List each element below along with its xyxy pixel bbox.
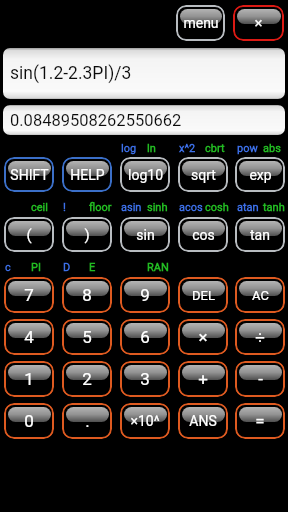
staticText: sin xyxy=(136,227,155,243)
staticText: ln xyxy=(147,142,156,155)
button[interactable]: log10 xyxy=(120,157,170,192)
staticText: 1 xyxy=(24,369,34,389)
button[interactable]: DEL xyxy=(178,277,228,313)
button[interactable]: tan xyxy=(235,217,285,252)
staticText: atan xyxy=(237,201,259,214)
button[interactable]: 1 xyxy=(4,361,54,397)
button[interactable]: 8 xyxy=(62,277,112,313)
button[interactable]: × xyxy=(233,5,284,41)
staticText: ) xyxy=(84,226,90,244)
staticText: cbrt xyxy=(205,142,225,155)
button[interactable]: 7 xyxy=(4,277,54,313)
button[interactable]: 4 xyxy=(4,319,54,355)
button[interactable]: sin xyxy=(120,217,170,252)
staticText: ! xyxy=(63,201,66,214)
staticText: HELP xyxy=(70,167,105,183)
staticText: 3 xyxy=(140,369,150,389)
other: Close xyxy=(233,5,284,41)
button[interactable]: ) xyxy=(62,217,112,252)
button[interactable]: 6 xyxy=(120,319,170,355)
button[interactable]: = xyxy=(235,403,285,439)
staticText: × xyxy=(198,327,208,347)
staticText: 0.08489508262550662 xyxy=(10,111,182,130)
button[interactable]: HELP xyxy=(62,157,112,192)
staticText: x^2 xyxy=(179,142,196,155)
staticText: abs xyxy=(263,142,281,155)
staticText: 7 xyxy=(24,285,34,305)
staticText: × xyxy=(254,14,263,32)
staticText: tanh xyxy=(263,201,285,214)
staticText: AC xyxy=(252,288,269,303)
button[interactable]: ANS xyxy=(178,403,228,439)
staticText: 2 xyxy=(82,369,92,389)
staticText: log xyxy=(121,142,137,155)
button[interactable]: + xyxy=(178,361,228,397)
staticText: . xyxy=(85,411,90,431)
button[interactable]: 5 xyxy=(62,319,112,355)
button[interactable]: 3 xyxy=(120,361,170,397)
staticText: 0 xyxy=(24,411,34,431)
staticText: tan xyxy=(250,227,270,243)
staticText: ×10^ xyxy=(130,413,160,429)
staticText: asin xyxy=(121,201,142,214)
staticText: ANS xyxy=(189,413,217,429)
button[interactable]: 0.08489508262550662 xyxy=(3,105,285,135)
staticText: 6 xyxy=(140,327,150,347)
button[interactable]: 0 xyxy=(4,403,54,439)
staticText: acos xyxy=(179,201,203,214)
staticText: ÷ xyxy=(255,327,265,347)
staticText: 9 xyxy=(140,285,150,305)
staticText: sqrt xyxy=(191,167,216,183)
staticText: = xyxy=(255,411,265,431)
staticText: PI xyxy=(31,261,41,274)
button[interactable]: . xyxy=(62,403,112,439)
button[interactable]: sin(1.2-2.3PI)/3 xyxy=(3,48,285,99)
staticText: floor xyxy=(89,201,112,214)
staticText: ( xyxy=(26,226,32,244)
button[interactable]: SHIFT xyxy=(4,157,54,192)
staticText: sinh xyxy=(147,201,168,214)
button[interactable]: 2 xyxy=(62,361,112,397)
staticText: menu xyxy=(183,15,219,31)
staticText: 5 xyxy=(82,327,92,347)
button[interactable]: sqrt xyxy=(178,157,228,192)
staticText: c xyxy=(5,261,11,274)
staticText: sin(1.2-2.3PI)/3 xyxy=(10,63,132,84)
button[interactable]: ÷ xyxy=(235,319,285,355)
button[interactable]: AC xyxy=(235,277,285,313)
staticText: E xyxy=(89,261,96,274)
button[interactable]: ( xyxy=(4,217,54,252)
button[interactable]: × xyxy=(178,319,228,355)
staticText: ceil xyxy=(31,201,48,214)
staticText: 8 xyxy=(82,285,92,305)
staticText: DEL xyxy=(192,288,215,303)
button[interactable]: ×10^ xyxy=(120,403,170,439)
staticText: 4 xyxy=(24,327,34,347)
staticText: D xyxy=(63,261,71,274)
staticText: cos xyxy=(192,227,215,243)
staticText: - xyxy=(258,369,263,389)
button[interactable]: exp xyxy=(235,157,285,192)
staticText: SHIFT xyxy=(10,167,49,183)
staticText: pow xyxy=(237,142,258,155)
staticText: + xyxy=(198,369,208,389)
button[interactable]: - xyxy=(235,361,285,397)
button[interactable]: 9 xyxy=(120,277,170,313)
button[interactable]: menu xyxy=(176,5,225,41)
button[interactable]: cos xyxy=(178,217,228,252)
staticText: cosh xyxy=(205,201,229,214)
staticText: exp xyxy=(249,167,272,183)
staticText: RAN xyxy=(147,261,169,274)
staticText: log10 xyxy=(128,167,163,183)
